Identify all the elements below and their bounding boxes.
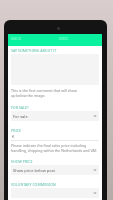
staticText: For sale: [13, 114, 28, 119]
staticText: SHOW PRICE: [11, 159, 33, 164]
button[interactable]: Show price below post: [11, 165, 99, 175]
staticText: SAY SOMETHING ABOUT IT: [11, 48, 57, 53]
button[interactable]: MISC: [55, 34, 102, 46]
staticText: Please indicate the final sales price in…: [11, 143, 99, 153]
button[interactable]: Select option: [11, 188, 99, 198]
staticText: MISC: [59, 36, 69, 41]
staticText: VOLUNTARY COMMISSION: [11, 182, 56, 187]
staticText: BACK: [11, 36, 22, 41]
staticText: This is the first comment that will show…: [11, 88, 81, 98]
button[interactable]: For sale: [11, 111, 99, 121]
button[interactable]: BACK: [8, 34, 55, 46]
staticText: €: [12, 134, 15, 139]
staticText: FOR SALE?: [11, 105, 29, 110]
staticText: Show price below post: [13, 168, 56, 173]
staticText: PRICE: [11, 128, 21, 133]
